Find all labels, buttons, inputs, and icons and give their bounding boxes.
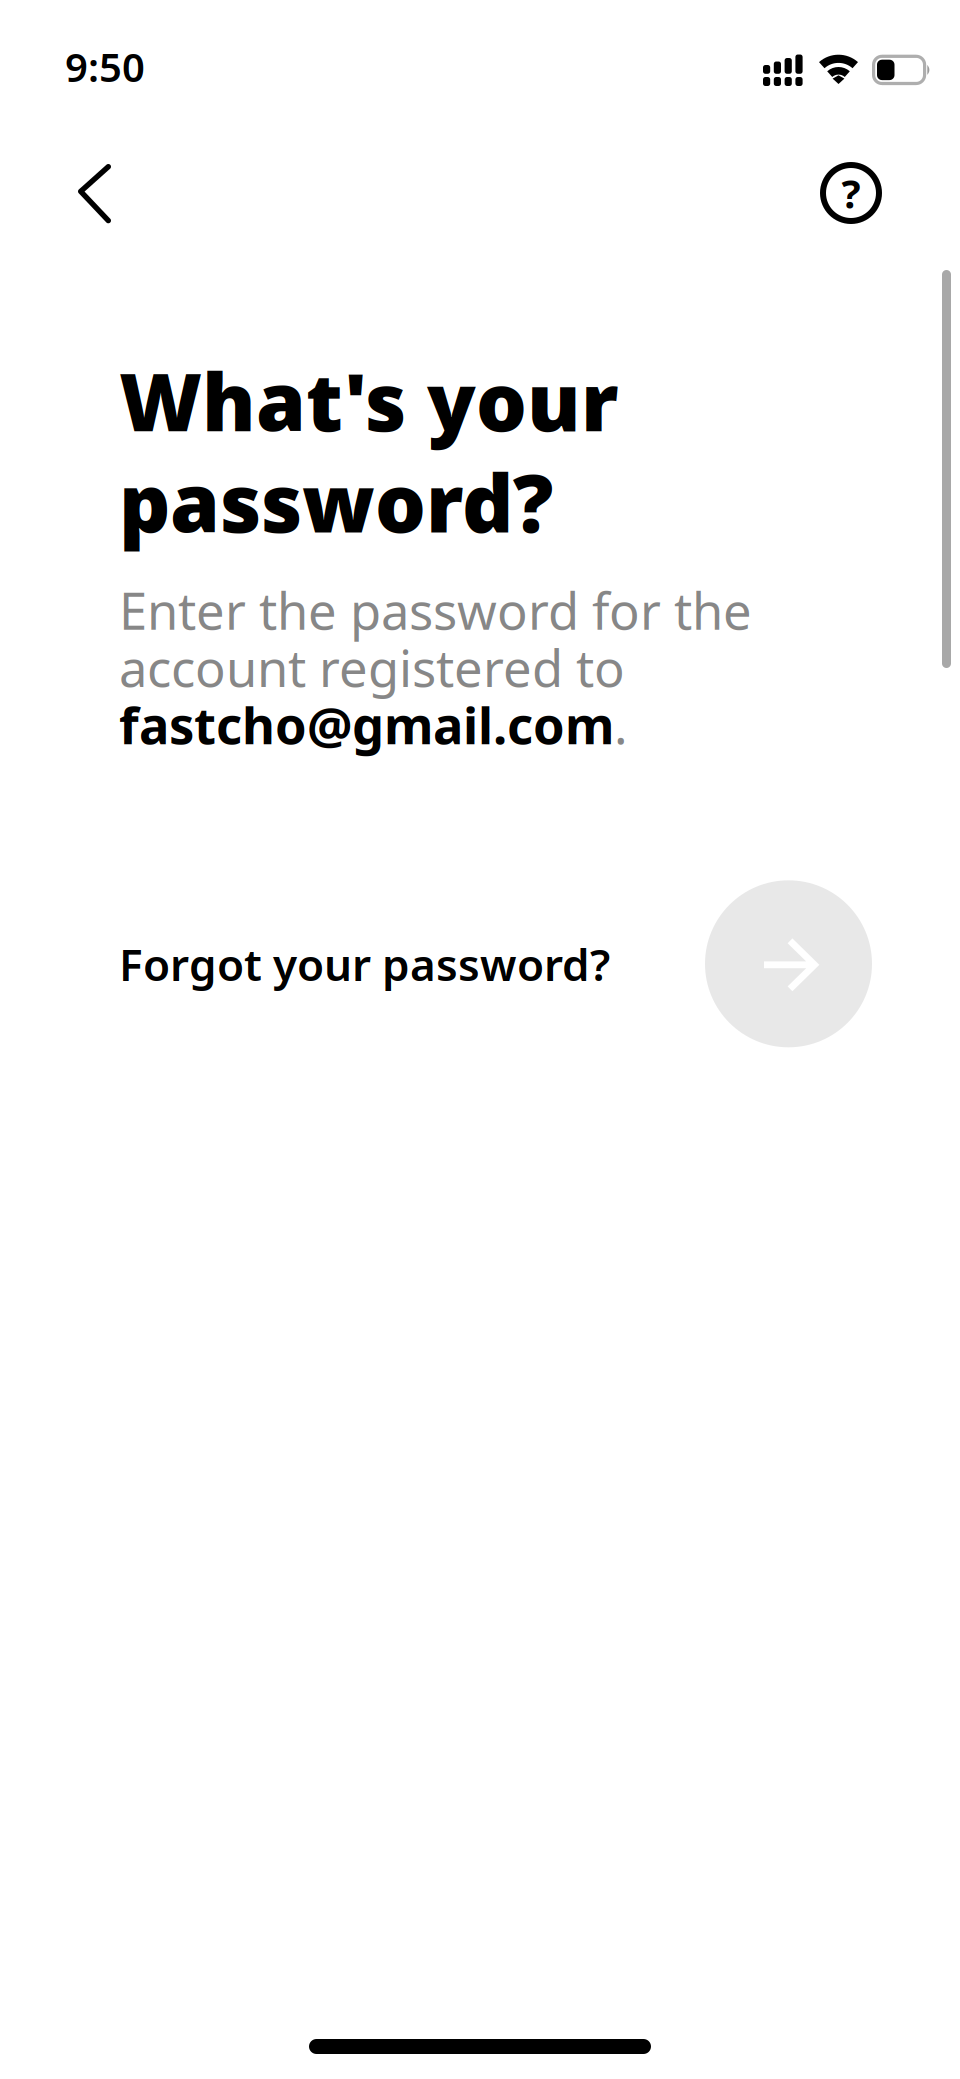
button[interactable]: Forgot your password?	[119, 905, 630, 1023]
staticText: fastcho@gmail.com	[119, 691, 614, 758]
staticText: .	[614, 691, 628, 758]
staticText: What's your	[119, 347, 619, 453]
button[interactable]: Continue	[705, 880, 872, 1047]
staticText: account registered to	[119, 634, 625, 701]
staticText: ?	[841, 166, 860, 219]
button[interactable]: Help	[776, 113, 924, 248]
staticText: password?	[119, 448, 553, 554]
staticText: 9:50	[65, 40, 145, 93]
staticText: Enter the password for the	[119, 576, 752, 644]
button[interactable]: Back	[0, 113, 155, 250]
staticText: Forgot your password?	[119, 935, 610, 993]
